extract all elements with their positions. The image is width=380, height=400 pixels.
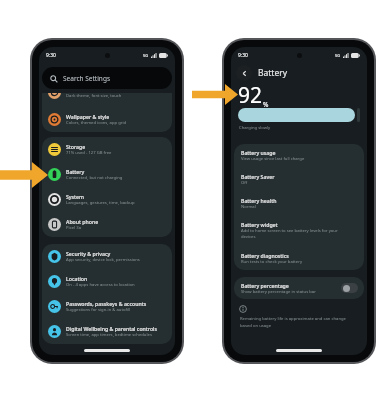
staticText: Languages, gestures, time, backup [66,200,135,206]
button[interactable]: Battery health [234,192,364,214]
button[interactable]: Display [42,93,172,99]
staticText: Connected, but not charging [66,175,123,181]
staticText: 9:30 [46,52,56,59]
staticText: On - 4 apps have access to location [66,282,135,288]
staticText: System [66,193,84,200]
staticText: Dark theme, font size, touch [66,93,122,99]
button[interactable]: Battery Saver [234,167,364,192]
staticText: About phone [66,218,99,225]
staticText: 9:30 [238,52,248,59]
staticText: Normal [241,204,256,210]
button[interactable]: Battery [42,162,172,187]
button[interactable]: Storage [42,137,172,162]
staticText: View usage since last full charge [241,156,305,162]
staticText: 5G [143,53,149,58]
button[interactable]: Wallpaper & style [42,107,172,132]
staticText: Battery health [241,197,277,204]
button[interactable]: Battery percentage [234,277,364,299]
staticText: Off [241,180,248,186]
button[interactable]: Battery diagnostics [234,246,364,270]
staticText: Pixel 3a [66,225,82,231]
staticText: Battery usage [241,149,276,156]
staticText: Search Settings [63,74,110,83]
staticText: Suggestions for sign-in & autofill [66,307,131,313]
button[interactable]: Battery usage [234,144,364,167]
staticText: Charging slowly [239,125,271,131]
staticText: 5G [335,53,341,58]
staticText: 71% used - 127 GB free [66,150,112,156]
button[interactable]: Digital Wellbeing & parental controls [42,319,172,344]
button[interactable]: Search Settings [42,67,172,89]
staticText: Storage [66,143,86,150]
staticText: Battery Saver [241,173,275,180]
staticText: Add to home screen to see battery levels… [241,228,342,240]
button[interactable]: Location [42,269,172,294]
staticText: Security & privacy [66,250,111,257]
staticText: Digital Wellbeing & parental controls [66,325,157,332]
staticText: Battery [258,67,288,79]
staticText: Wallpaper & style [66,113,110,120]
button[interactable]: System [42,187,172,212]
staticText: Passwords, passkeys & accounts [66,300,147,307]
staticText: Battery widget [241,221,278,228]
staticText: Battery [66,168,85,175]
button[interactable]: Battery widget [234,214,364,246]
button[interactable]: Passwords, passkeys & accounts [42,294,172,319]
staticText: % [263,100,269,109]
staticText: Battery percentage [241,282,289,289]
staticText: App security, device lock, permissions [66,257,140,263]
button[interactable]: About phone [42,212,172,237]
button[interactable]: Security & privacy [42,244,172,269]
staticText: Remaining battery life is approximate an… [240,316,351,328]
button[interactable]: Back [236,65,252,81]
staticText: Location [66,275,88,282]
staticText: Show battery percentage in status bar [241,289,316,295]
staticText: Battery diagnostics [241,252,289,259]
staticText: Screen time, app timers, bedtime schedul… [66,332,152,338]
staticText: 92 [238,81,263,110]
staticText: Run tests to check your battery [241,259,303,265]
staticText: Colors, themed icons, app grid [66,120,127,126]
